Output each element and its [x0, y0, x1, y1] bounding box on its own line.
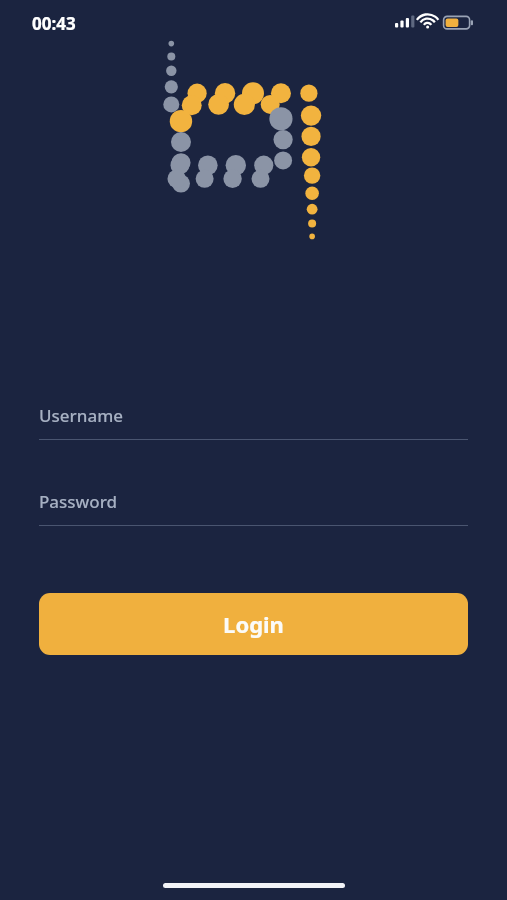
staticText: Username — [39, 404, 123, 427]
staticText: Password — [39, 490, 118, 513]
button[interactable]: Username — [39, 404, 468, 440]
staticText: 00:43 — [32, 12, 76, 35]
button[interactable]: Password — [39, 490, 468, 526]
button[interactable]: Login — [39, 593, 468, 655]
staticText: Login — [223, 609, 284, 639]
other: App logo — [0, 46, 507, 266]
